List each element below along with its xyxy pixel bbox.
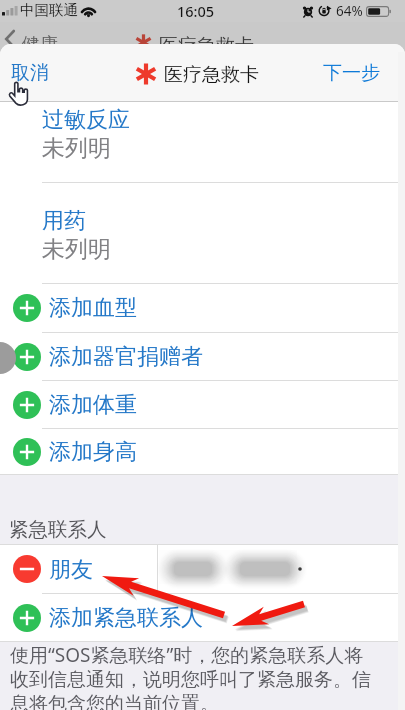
button[interactable]: 用药 xyxy=(0,183,405,283)
staticText: 息将包含您的当前位置。 xyxy=(10,692,219,710)
button[interactable]: 朋友 xyxy=(0,545,405,593)
staticText: 用药 xyxy=(42,207,86,235)
staticText: 64% xyxy=(336,2,363,20)
button[interactable]: 添加血型 xyxy=(0,284,405,332)
staticText: 使用“SOS紧急联络”时，您的紧急联系人将 xyxy=(10,642,364,668)
button[interactable]: 添加器官捐赠者 xyxy=(0,333,405,380)
staticText: 添加体重 xyxy=(49,391,137,419)
staticText: 医疗急救卡 xyxy=(164,63,259,87)
staticText: 添加血型 xyxy=(49,294,137,322)
staticText: 收到信息通知，说明您呼叫了紧急服务。信 xyxy=(10,668,371,692)
staticText: 朋友 xyxy=(49,556,93,584)
staticText: 未列明 xyxy=(42,235,111,264)
button[interactable]: 下一步 xyxy=(309,57,405,91)
staticText: 中国联通 xyxy=(20,1,78,19)
button[interactable]: 过敏反应 xyxy=(0,102,405,182)
button[interactable]: 添加紧急联系人 xyxy=(0,594,405,641)
staticText: 过敏反应 xyxy=(42,106,130,134)
staticText: 未列明 xyxy=(42,134,111,163)
staticText: 添加紧急联系人 xyxy=(49,604,203,632)
button[interactable]: 添加身高 xyxy=(0,429,405,474)
staticText: 16:05 xyxy=(177,1,215,21)
button[interactable]: 取消 xyxy=(0,57,63,91)
staticText: 添加器官捐赠者 xyxy=(49,343,203,371)
staticText: 添加身高 xyxy=(49,438,137,466)
button[interactable]: 添加体重 xyxy=(0,381,405,428)
staticText: 取消 xyxy=(11,61,49,85)
staticText: 健康 xyxy=(22,33,58,56)
staticText: 下一步 xyxy=(323,61,380,85)
staticText: 紧急联系人 xyxy=(9,517,107,542)
staticText: 医疗急救卡 xyxy=(159,34,254,58)
